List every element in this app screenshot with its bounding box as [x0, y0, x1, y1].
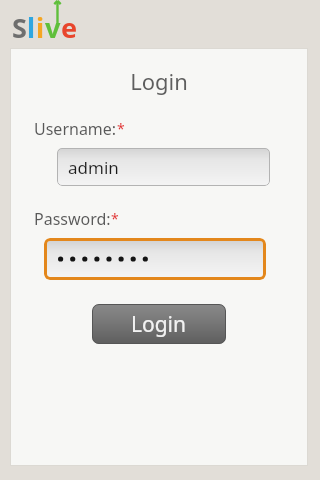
staticText: Username:	[34, 118, 117, 140]
staticText: Login	[131, 310, 187, 339]
button[interactable]: Login	[92, 304, 226, 344]
other: Password entered	[58, 249, 158, 269]
staticText: *	[111, 209, 119, 228]
staticText: admin	[68, 156, 119, 179]
staticText: l	[27, 9, 36, 46]
button[interactable]: Password entered	[47, 241, 263, 277]
staticText: i	[36, 9, 45, 46]
staticText: Login	[10, 66, 308, 96]
staticText: *	[117, 119, 125, 138]
staticText: e	[61, 9, 78, 46]
staticText: v	[45, 9, 61, 46]
button[interactable]: admin	[57, 148, 270, 186]
staticText: Password:	[34, 208, 111, 230]
staticText: S	[12, 9, 27, 46]
